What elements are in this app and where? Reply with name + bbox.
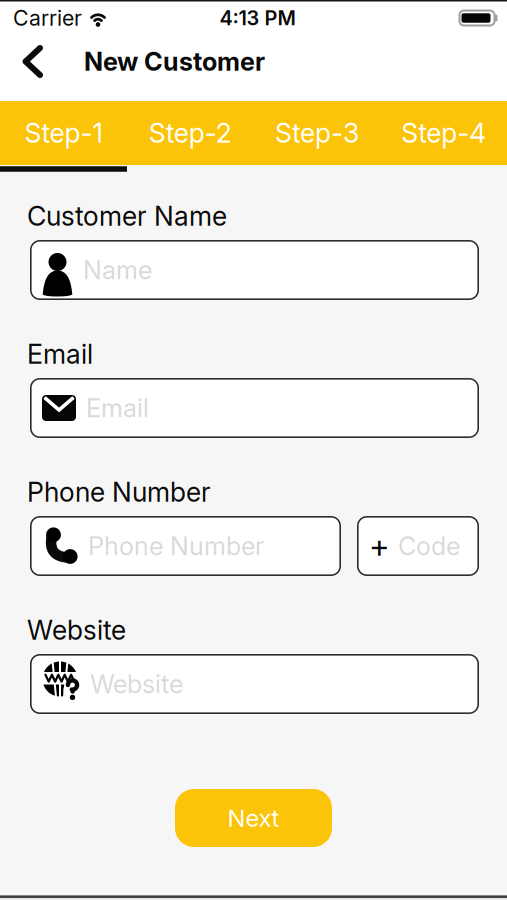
button[interactable]: Phone Number [30,516,341,576]
staticText: 4:13 PM [219,6,295,30]
button[interactable]: Step-1 [0,117,127,149]
staticText: Website [90,669,183,699]
staticText: Email [86,393,149,423]
button[interactable]: Name [0,240,507,300]
staticText: Step-2 [149,117,232,149]
staticText: Phone Number [88,531,264,561]
button[interactable]: Back [0,45,43,77]
button[interactable]: Next [175,789,332,847]
staticText: Phone Number [27,476,211,508]
staticText: Name [83,255,152,285]
button[interactable]: Step-4 [380,117,507,149]
button[interactable]: Email [0,378,507,438]
staticText: Customer Name [27,200,227,232]
button[interactable]: Step-2 [127,117,254,149]
staticText: New Customer [84,47,265,76]
button[interactable]: Step-3 [253,117,380,149]
staticText: Step-1 [24,117,102,149]
staticText: Step-3 [275,117,359,149]
staticText: Step-4 [401,117,486,149]
staticText: Next [227,804,279,832]
staticText: Email [27,338,93,370]
staticText: Code [398,531,460,561]
staticText: + [369,527,390,565]
button[interactable]: Website [0,654,507,714]
button[interactable]: Country code [357,516,479,576]
staticText: Carrier [13,5,82,31]
staticText: Website [27,614,126,646]
